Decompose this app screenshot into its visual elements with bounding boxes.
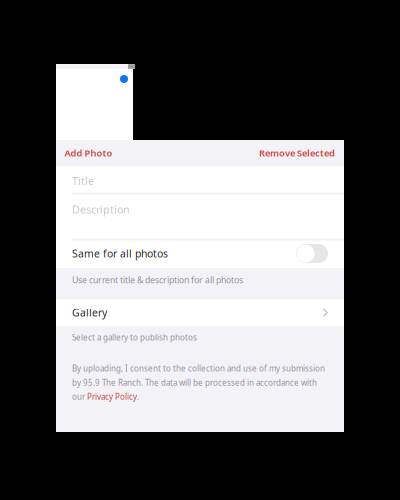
staticText: Privacy Policy xyxy=(87,391,137,402)
staticText: . xyxy=(137,391,139,402)
staticText: Title xyxy=(72,173,94,188)
staticText: Use current title & description for all … xyxy=(72,274,243,286)
staticText: Description xyxy=(72,202,130,216)
button[interactable]: Same for all photos xyxy=(56,239,344,268)
staticText: Same for all photos xyxy=(72,246,168,261)
staticText: Select a gallery to publish photos xyxy=(72,332,197,343)
staticText: our xyxy=(72,391,87,402)
staticText: Gallery xyxy=(72,305,107,320)
button[interactable]: Add Photo xyxy=(56,138,119,168)
button[interactable]: Photo, selected xyxy=(56,69,133,140)
staticText: by 95.9 The Ranch. The data will be proc… xyxy=(72,377,317,388)
button[interactable]: Privacy Policy xyxy=(87,391,137,402)
staticText: By uploading, I consent to the collectio… xyxy=(72,363,325,374)
staticText: Remove Selected xyxy=(259,147,335,159)
staticText: Add Photo xyxy=(65,147,113,159)
button[interactable]: Remove Selected xyxy=(253,138,344,168)
button[interactable]: Gallery xyxy=(56,299,344,326)
